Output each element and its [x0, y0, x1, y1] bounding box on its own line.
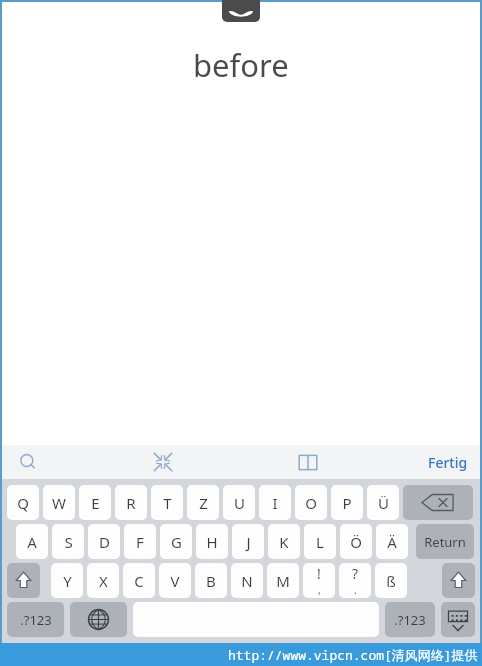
button[interactable]: Ä	[376, 524, 408, 559]
button[interactable]: Backspace	[403, 485, 473, 520]
button[interactable]: ?	[339, 563, 371, 598]
button[interactable]: Hide keyboard	[441, 602, 475, 637]
staticText: J	[246, 532, 251, 552]
button[interactable]: Z	[187, 485, 219, 520]
staticText: N	[241, 571, 253, 591]
staticText: ,	[318, 583, 321, 597]
staticText: L	[316, 532, 324, 552]
button[interactable]: Shift	[442, 563, 475, 598]
button[interactable]: F	[124, 524, 156, 559]
staticText: F	[136, 532, 144, 552]
button[interactable]: P	[331, 485, 363, 520]
staticText: Ä	[387, 532, 397, 552]
button[interactable]: Shift	[7, 563, 40, 598]
button[interactable]: Change language	[70, 602, 127, 637]
button[interactable]: R	[115, 485, 147, 520]
button[interactable]: G	[160, 524, 192, 559]
button[interactable]: ß	[375, 563, 407, 598]
button[interactable]: Mail	[222, 0, 260, 22]
staticText: Z	[199, 493, 208, 513]
button[interactable]: K	[268, 524, 300, 559]
button[interactable]: Ö	[340, 524, 372, 559]
button[interactable]: T	[151, 485, 183, 520]
staticText: P	[342, 493, 352, 513]
button[interactable]: I	[259, 485, 291, 520]
staticText: X	[99, 571, 108, 591]
staticText: .	[354, 583, 357, 597]
button[interactable]: A	[16, 524, 48, 559]
staticText: Ö	[350, 532, 362, 552]
staticText: .?123	[394, 611, 426, 629]
staticText: Fertig	[428, 453, 468, 472]
staticText: H	[206, 532, 218, 552]
staticText: B	[206, 571, 216, 591]
staticText: !	[317, 564, 321, 583]
staticText: K	[279, 532, 289, 552]
staticText: http://www.vipcn.com[清风网络]提供	[228, 646, 478, 664]
button[interactable]: C	[123, 563, 155, 598]
staticText: .?123	[20, 611, 52, 629]
button[interactable]: Fertig	[428, 453, 468, 472]
staticText: R	[126, 493, 136, 513]
button[interactable]: Dictionary	[288, 445, 328, 479]
button[interactable]: L	[304, 524, 336, 559]
staticText: Ü	[378, 493, 389, 513]
button[interactable]: Collapse	[143, 445, 183, 479]
staticText: W	[52, 493, 66, 513]
button[interactable]: U	[223, 485, 255, 520]
staticText: ß	[386, 571, 396, 591]
button[interactable]: O	[295, 485, 327, 520]
staticText: T	[163, 493, 172, 513]
staticText: before	[193, 44, 289, 86]
button[interactable]: M	[267, 563, 299, 598]
staticText: Y	[63, 571, 72, 591]
button[interactable]: N	[231, 563, 263, 598]
button[interactable]: .?123	[7, 602, 64, 637]
button[interactable]: S	[52, 524, 84, 559]
button[interactable]: Ü	[367, 485, 399, 520]
button[interactable]: .?123	[385, 602, 435, 637]
staticText: A	[27, 532, 37, 552]
button[interactable]: W	[43, 485, 75, 520]
staticText: ?	[352, 564, 359, 583]
staticText: C	[134, 571, 144, 591]
button[interactable]: Return	[416, 524, 474, 559]
button[interactable]: !	[303, 563, 335, 598]
button[interactable]: J	[232, 524, 264, 559]
button[interactable]: E	[79, 485, 111, 520]
staticText: O	[305, 493, 317, 513]
button[interactable]: X	[87, 563, 119, 598]
staticText: U	[234, 493, 245, 513]
staticText: I	[272, 493, 278, 513]
staticText: V	[170, 571, 180, 591]
button[interactable]: Y	[51, 563, 83, 598]
button[interactable]: D	[88, 524, 120, 559]
staticText: M	[276, 571, 290, 591]
button[interactable]: H	[196, 524, 228, 559]
staticText: E	[91, 493, 100, 513]
staticText: D	[99, 532, 110, 552]
button[interactable]: Search	[8, 445, 48, 479]
staticText: Q	[17, 493, 29, 513]
staticText: S	[64, 532, 73, 552]
button[interactable]: V	[159, 563, 191, 598]
staticText: Return	[424, 533, 466, 551]
staticText: G	[171, 532, 182, 552]
button[interactable]: B	[195, 563, 227, 598]
button[interactable]: Q	[7, 485, 39, 520]
